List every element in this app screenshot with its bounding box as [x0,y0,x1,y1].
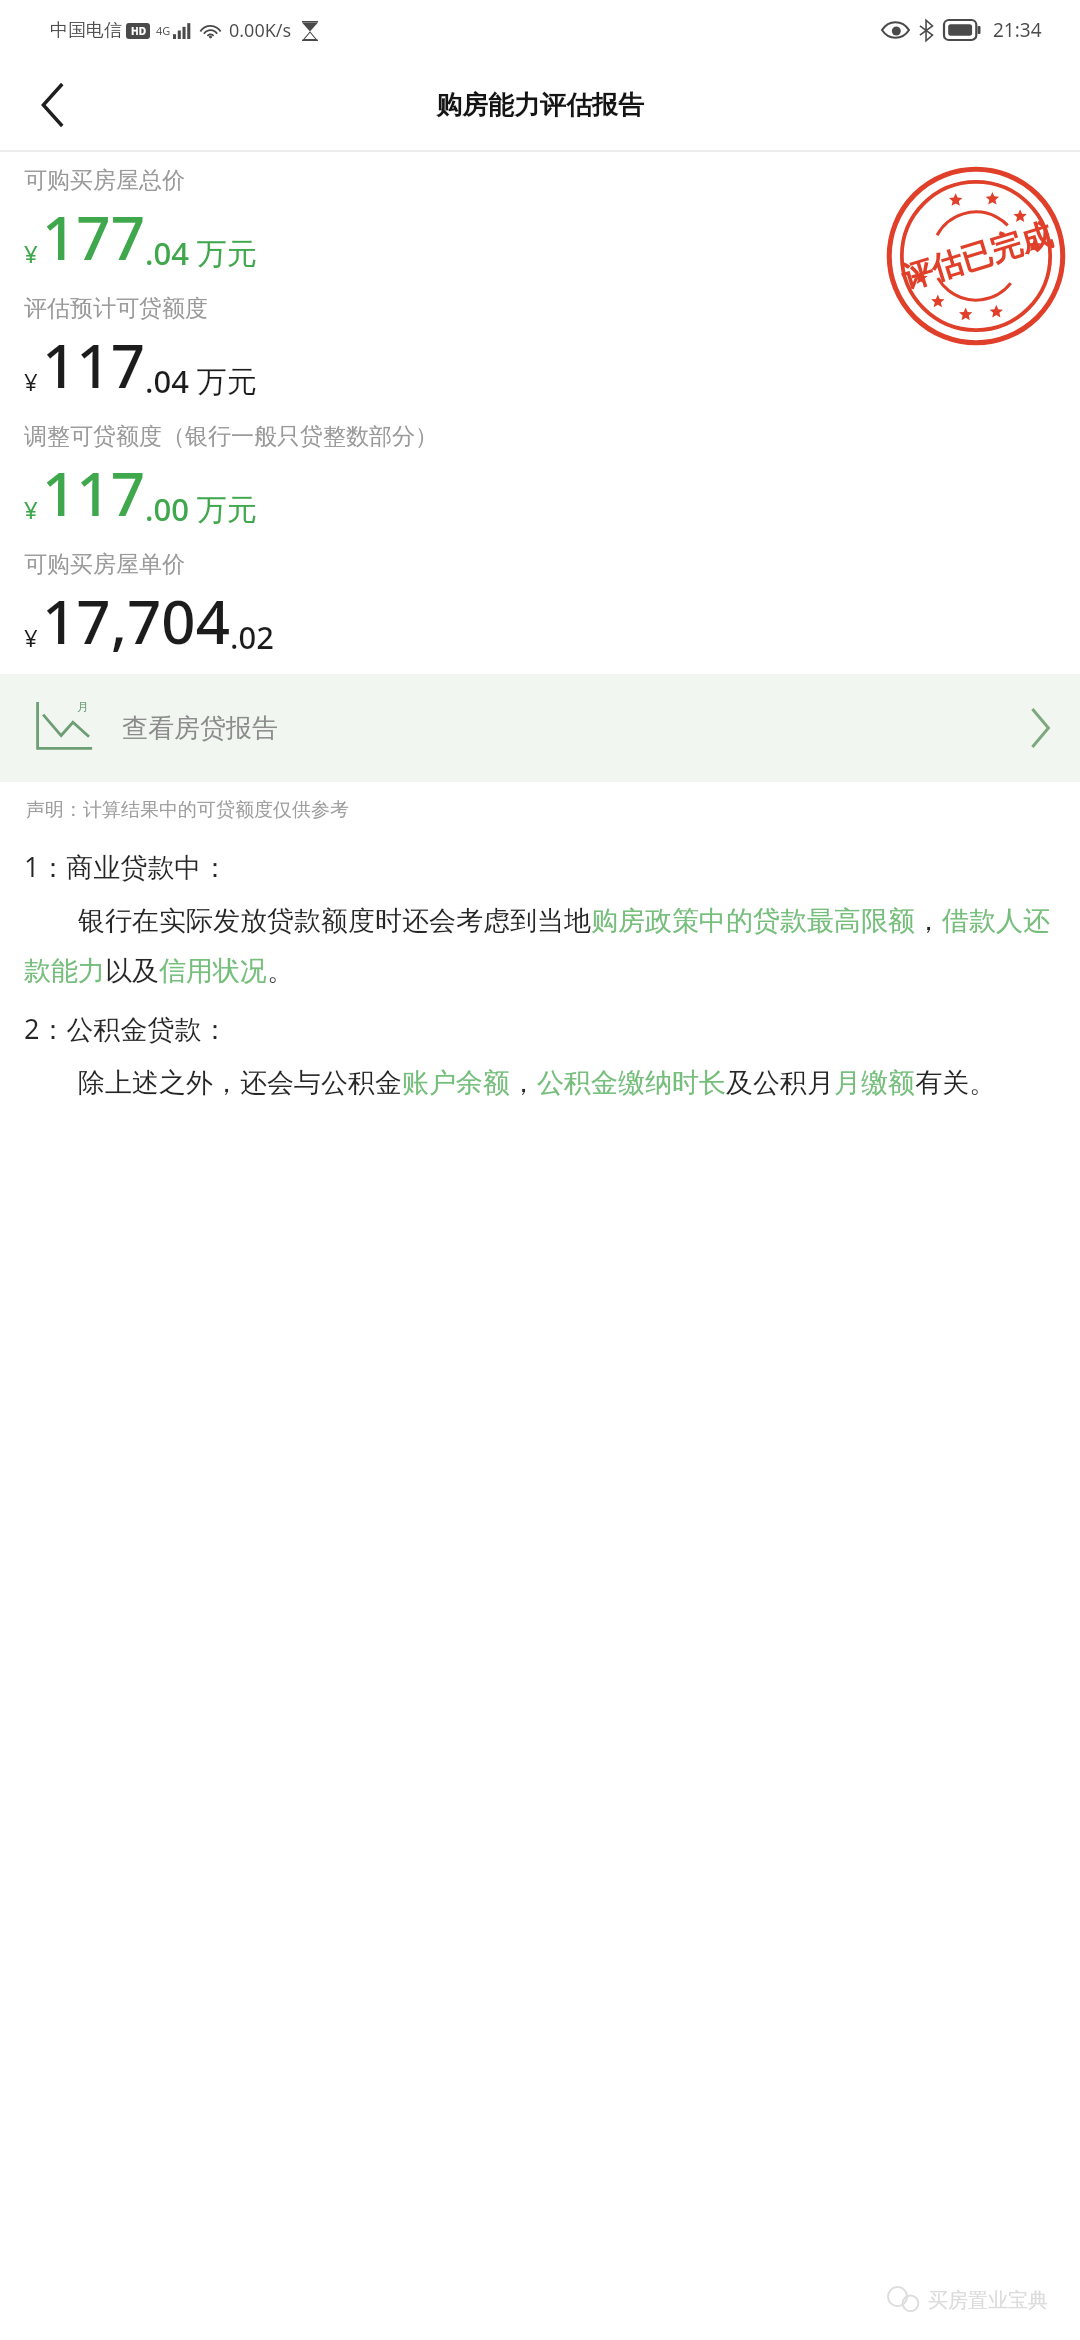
staticText: 万元 [189,232,257,273]
staticText: 查看房贷报告 [122,712,278,745]
staticText: 除上述之外，还会与公积金账户余额，公积金缴纳时长及公积月月缴额有关。 [24,1063,996,1100]
staticText: 117 [42,452,145,534]
staticText: 调整可贷额度（银行一般只贷整数部分） [24,422,438,451]
staticText: 买房置业宝典 [928,2288,1048,2313]
staticText: 评估已完成 [897,215,1056,298]
button[interactable]: 月 [0,674,1080,782]
staticText: 2：公积金贷款： [24,1010,229,1047]
staticText: .00 [145,488,189,530]
staticText: 声明：计算结果中的可贷额度仅供参考 [26,798,349,822]
staticText: 可购买房屋总价 [24,166,185,195]
staticText: ¥ [24,365,38,398]
staticText: ¥ [24,621,38,654]
staticText: 万元 [189,360,257,401]
staticText: 可购买房屋单价 [24,550,185,579]
staticText: 0.00K/s [229,18,292,43]
staticText: 中国电信 [50,19,122,42]
staticText: 评估预计可贷额度 [24,294,208,323]
staticText: 4G [156,23,171,38]
staticText: ¥ [24,493,38,526]
staticText: 21:34 [993,17,1042,43]
staticText: 银行在实际发放贷款额度时还会考虑到当地购房政策中的贷款最高限额，借款人还款能力以… [24,901,1060,988]
staticText: .04 [145,360,189,402]
staticText: 1：商业贷款中： [24,848,229,885]
staticText: 117 [42,324,145,406]
staticText: 17,704 [42,580,230,662]
staticText: HD [131,24,146,38]
staticText: .02 [230,616,274,658]
staticText: .04 [145,232,189,274]
staticText: 177 [42,196,145,278]
staticText: ¥ [24,237,38,270]
staticText: 购房能力评估报告 [436,89,644,122]
staticText: 月 [77,699,89,714]
staticText: 万元 [189,488,257,529]
button[interactable]: 返回 [20,72,86,138]
